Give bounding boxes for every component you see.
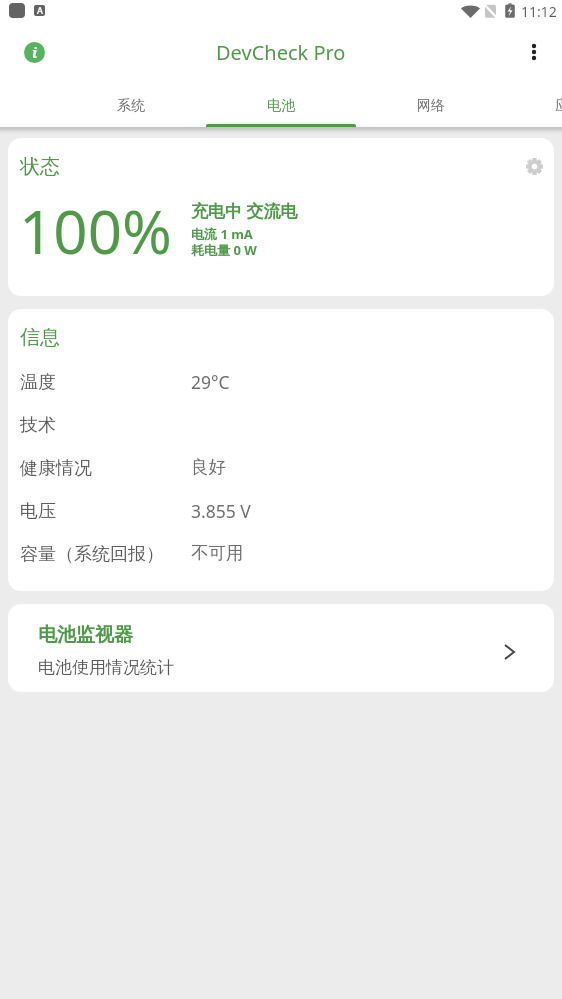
staticText: 健康情况 xyxy=(20,457,92,480)
button[interactable]: 容量（系统回报） xyxy=(8,543,554,586)
staticText: 信息 xyxy=(20,325,60,350)
staticText: 电压 xyxy=(20,500,56,523)
button[interactable]: 电池 xyxy=(206,81,356,127)
staticText: 容量（系统回报） xyxy=(20,543,164,566)
staticText: 3.855 V xyxy=(191,499,251,523)
staticText: 网络 xyxy=(417,97,445,115)
staticText: 状态 xyxy=(20,154,60,179)
staticText: 应用程序 xyxy=(555,97,562,115)
button[interactable]: 应用程序 xyxy=(508,81,562,127)
staticText: 良好 xyxy=(191,456,226,478)
staticText: 电池 xyxy=(267,97,295,115)
staticText: 电池使用情况统计 xyxy=(38,657,174,678)
staticText: 电池监视器 xyxy=(38,623,133,647)
staticText: DevCheck Pro xyxy=(216,39,346,66)
staticText: 系统 xyxy=(117,97,145,115)
button[interactable]: Settings xyxy=(518,150,550,182)
staticText: 不可用 xyxy=(191,542,244,564)
staticText: 29°C xyxy=(191,370,230,394)
button[interactable]: 电池监视器 xyxy=(8,604,554,692)
button[interactable]: 电压 xyxy=(8,500,554,543)
staticText: i xyxy=(32,42,38,62)
staticText: 电流 1 mA xyxy=(191,225,253,243)
button[interactable]: More options xyxy=(514,32,554,72)
button[interactable]: App info xyxy=(14,32,54,72)
staticText: 耗电量 0 W xyxy=(191,241,257,259)
button[interactable]: 健康情况 xyxy=(8,457,554,500)
staticText: 100% xyxy=(19,190,172,272)
button[interactable]: 系统 xyxy=(56,81,206,127)
staticText: 技术 xyxy=(20,414,56,437)
staticText: 温度 xyxy=(20,371,56,394)
button[interactable]: 温度 xyxy=(8,371,554,414)
button[interactable]: 网络 xyxy=(356,81,506,127)
staticText: 充电中 交流电 xyxy=(191,199,298,222)
button[interactable]: 技术 xyxy=(8,414,554,457)
staticText: 11:12 xyxy=(521,2,557,21)
staticText: A xyxy=(37,4,43,15)
